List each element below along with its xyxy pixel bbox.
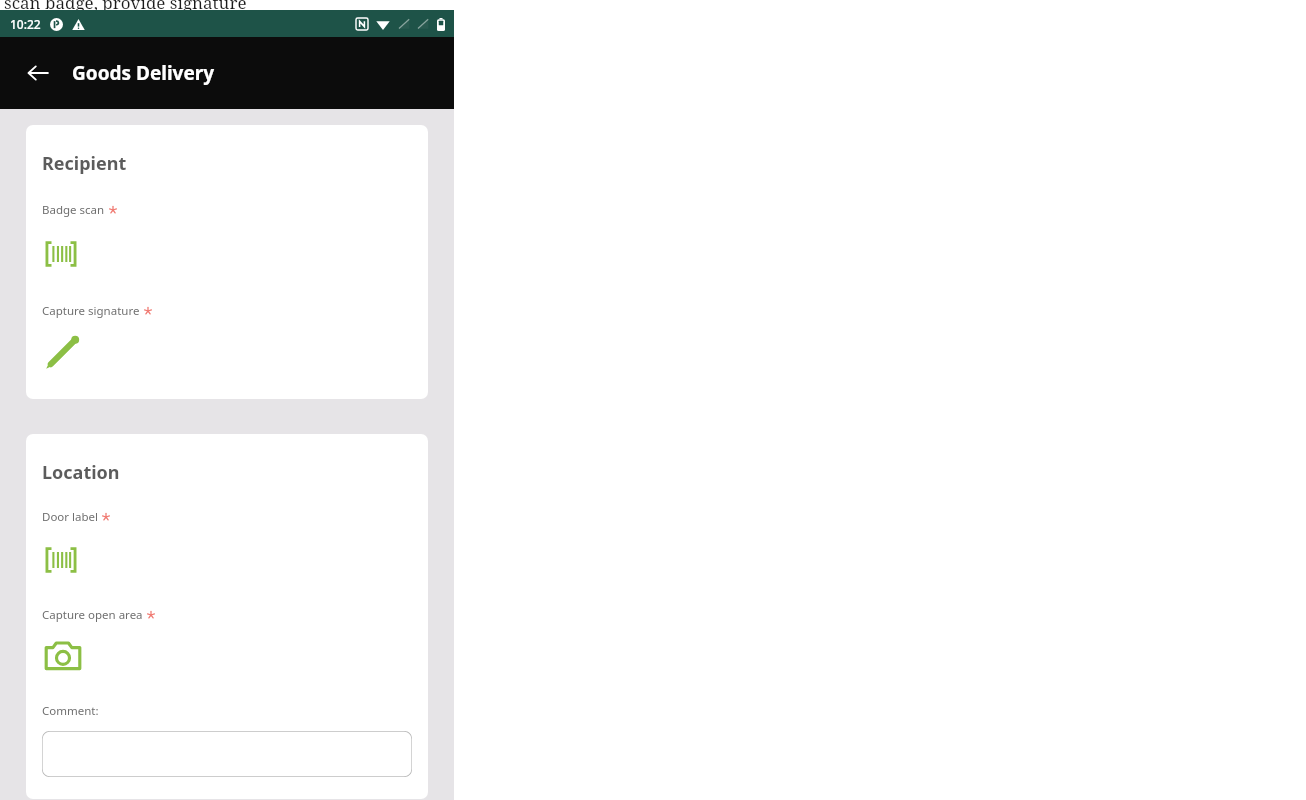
button[interactable]: Scan door label bbox=[42, 537, 88, 583]
staticText: Capture open area bbox=[42, 607, 143, 623]
button[interactable] bbox=[42, 731, 412, 777]
staticText: Badge scan bbox=[42, 202, 105, 218]
button[interactable]: Capture signature bbox=[42, 329, 88, 375]
staticText: Door label bbox=[42, 509, 98, 525]
staticText: Capture signature bbox=[42, 303, 140, 319]
staticText: scan badge, provide signature bbox=[4, 0, 247, 14]
button[interactable]: Scan badge bbox=[42, 231, 88, 277]
button[interactable]: Capture open area photo bbox=[42, 633, 88, 679]
staticText: Comment: bbox=[42, 703, 99, 719]
staticText: 10:22 bbox=[10, 16, 41, 32]
button[interactable]: Back bbox=[18, 53, 58, 93]
staticText: Goods Delivery bbox=[72, 60, 215, 86]
staticText: Location bbox=[42, 460, 120, 485]
staticText: Recipient bbox=[42, 151, 127, 176]
